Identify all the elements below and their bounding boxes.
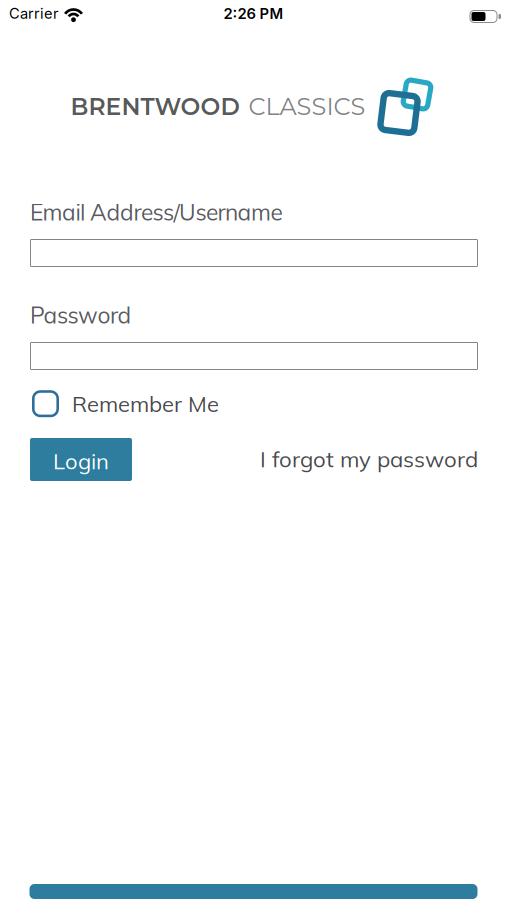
staticText: Password [30, 301, 131, 329]
staticText: 2:26 PM [223, 4, 283, 22]
staticText: BRENTWOOD [70, 92, 239, 121]
staticText: Login [53, 447, 109, 475]
button[interactable]: Login [30, 438, 132, 481]
button[interactable] [30, 342, 478, 370]
staticText: Email Address/Username [30, 198, 282, 226]
button[interactable] [30, 239, 478, 267]
staticText: CLASSICS [248, 92, 365, 121]
staticText: I forgot my password [260, 445, 478, 473]
staticText: Carrier [9, 5, 59, 22]
button[interactable]: I forgot my password [260, 447, 478, 471]
button[interactable]: Remember Me [32, 390, 219, 417]
staticText: Remember Me [72, 390, 219, 417]
